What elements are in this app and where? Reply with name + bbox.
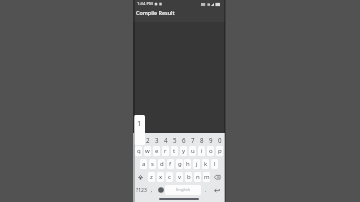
staticText: j xyxy=(196,160,198,168)
button[interactable]: c xyxy=(166,172,173,182)
staticText: English xyxy=(176,187,191,193)
staticText: n xyxy=(196,173,200,181)
button[interactable]: , xyxy=(148,185,156,195)
button[interactable]: i xyxy=(198,146,205,156)
button[interactable]: a xyxy=(140,159,147,169)
staticText: 1:34 PM xyxy=(137,1,153,7)
button[interactable] xyxy=(210,185,223,195)
button[interactable]: d xyxy=(158,159,165,169)
staticText: m xyxy=(204,173,210,181)
button[interactable]: t xyxy=(171,146,178,156)
staticText: d xyxy=(160,160,164,168)
button[interactable]: g xyxy=(176,159,183,169)
button[interactable]: 6 xyxy=(179,133,188,146)
button[interactable]: 3 xyxy=(152,133,161,146)
staticText: 2 xyxy=(146,136,150,144)
staticText: . xyxy=(205,187,207,194)
staticText: 9 xyxy=(209,136,213,144)
staticText: g xyxy=(178,160,182,168)
staticText: o xyxy=(209,147,213,155)
staticText: v xyxy=(178,173,182,181)
button[interactable]: English xyxy=(165,185,201,195)
staticText: 1 xyxy=(137,118,142,128)
staticText: 0 xyxy=(218,136,222,144)
staticText: r xyxy=(164,147,167,155)
button[interactable]: . xyxy=(202,185,210,195)
staticText: Compile Result xyxy=(136,9,175,16)
button[interactable]: q xyxy=(135,146,142,156)
button[interactable]: l xyxy=(211,159,218,169)
button[interactable]: s xyxy=(149,159,156,169)
staticText: h xyxy=(186,160,190,168)
staticText: 5 xyxy=(173,136,177,144)
button[interactable]: n xyxy=(194,172,201,182)
button[interactable] xyxy=(135,172,146,182)
button[interactable]: 7 xyxy=(188,133,197,146)
staticText: 3 xyxy=(155,136,159,144)
staticText: 7 xyxy=(191,136,195,144)
button[interactable]: ?123 xyxy=(135,185,148,195)
staticText: z xyxy=(150,173,153,181)
staticText: s xyxy=(151,160,154,168)
staticText: k xyxy=(204,160,208,168)
button[interactable]: v xyxy=(176,172,183,182)
button[interactable]: 0 xyxy=(215,133,224,146)
staticText: , xyxy=(151,187,153,194)
button[interactable]: 8 xyxy=(197,133,206,146)
staticText: b xyxy=(187,173,191,181)
button[interactable]: x xyxy=(157,172,164,182)
button[interactable] xyxy=(134,133,143,146)
button[interactable]: w xyxy=(144,146,151,156)
button[interactable]: j xyxy=(193,159,200,169)
button[interactable]: m xyxy=(203,172,210,182)
staticText: a xyxy=(142,160,146,168)
staticText: f xyxy=(169,160,172,168)
button[interactable]: p xyxy=(216,146,223,156)
button[interactable]: o xyxy=(207,146,214,156)
staticText: q xyxy=(137,147,141,155)
button[interactable]: y xyxy=(180,146,187,156)
button[interactable]: h xyxy=(184,159,191,169)
staticText: y xyxy=(182,147,186,155)
button[interactable]: e xyxy=(153,146,160,156)
button[interactable] xyxy=(157,185,165,195)
staticText: x xyxy=(159,173,163,181)
staticText: ?123 xyxy=(136,187,147,194)
staticText: l xyxy=(214,160,216,168)
staticText: c xyxy=(168,173,171,181)
staticText: p xyxy=(218,147,222,155)
button[interactable]: 4 xyxy=(161,133,170,146)
button[interactable]: f xyxy=(167,159,174,169)
button[interactable]: z xyxy=(148,172,155,182)
button[interactable] xyxy=(212,172,223,182)
button[interactable]: 9 xyxy=(206,133,215,146)
button[interactable]: k xyxy=(202,159,209,169)
staticText: i xyxy=(201,147,203,155)
staticText: e xyxy=(155,147,159,155)
staticText: 6 xyxy=(182,136,186,144)
staticText: 8 xyxy=(200,136,204,144)
staticText: w xyxy=(145,147,150,155)
staticText: 4 xyxy=(164,136,168,144)
button[interactable]: 2 xyxy=(143,133,152,146)
staticText: u xyxy=(191,147,195,155)
button[interactable]: u xyxy=(189,146,196,156)
staticText: t xyxy=(173,147,176,155)
button[interactable]: r xyxy=(162,146,169,156)
button[interactable]: 5 xyxy=(170,133,179,146)
button[interactable]: b xyxy=(185,172,192,182)
